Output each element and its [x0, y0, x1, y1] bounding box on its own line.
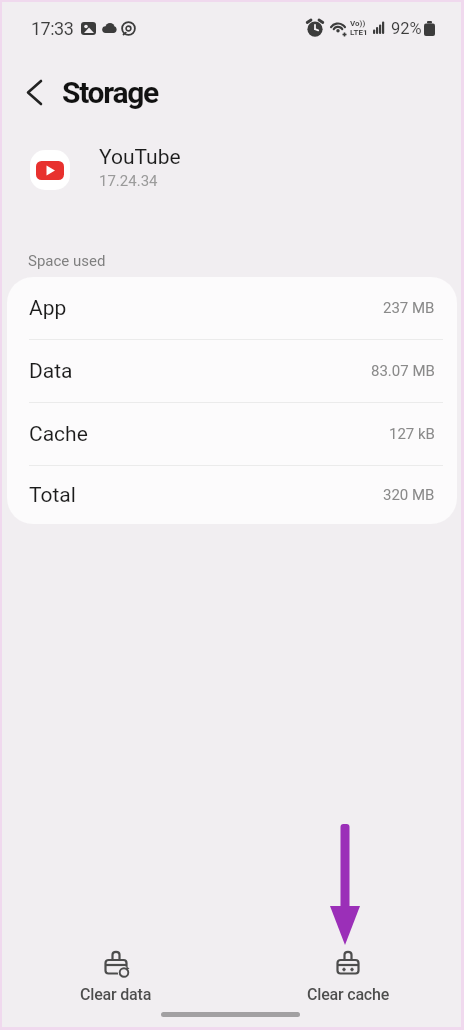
button[interactable]: Clear cache — [232, 946, 464, 1008]
staticText: 92% — [391, 19, 422, 38]
staticText: Cache — [29, 422, 88, 447]
staticText: 83.07 MB — [371, 362, 435, 380]
staticText: 320 MB — [383, 486, 435, 504]
staticText: Space used — [28, 252, 106, 270]
staticText: Total — [29, 483, 76, 508]
staticText: 127 kB — [389, 425, 435, 443]
staticText: LTE1 — [350, 28, 368, 37]
staticText: Vo)) — [350, 19, 366, 28]
staticText: Clear data — [80, 985, 152, 1004]
button[interactable]: App — [7, 277, 457, 339]
staticText: App — [29, 296, 67, 321]
staticText: 237 MB — [383, 299, 435, 317]
button[interactable]: Clear data — [0, 946, 232, 1008]
button[interactable]: Total — [7, 466, 457, 524]
button[interactable]: Data — [7, 340, 457, 402]
staticText: Storage — [62, 75, 158, 110]
staticText: 17:33 — [31, 18, 74, 39]
staticText: YouTube — [99, 145, 181, 170]
staticText: Data — [29, 359, 73, 384]
button[interactable] — [16, 74, 52, 110]
staticText: Clear cache — [307, 985, 390, 1004]
button[interactable]: Cache — [7, 403, 457, 465]
staticText: 17.24.34 — [99, 172, 158, 190]
